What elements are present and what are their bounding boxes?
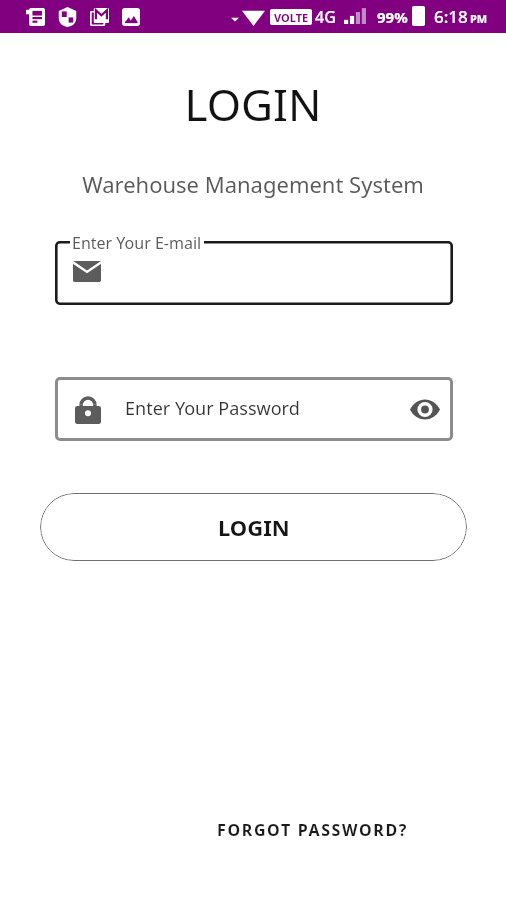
- staticText: PM: [470, 11, 488, 26]
- staticText: 6:18: [434, 5, 468, 28]
- staticText: LOGIN: [218, 512, 290, 542]
- staticText: Enter Your E-mail: [72, 232, 202, 254]
- staticText: 4G: [315, 6, 336, 28]
- button[interactable]: FORGOT PASSWORD?: [211, 813, 415, 847]
- staticText: Warehouse Management System: [0, 169, 506, 199]
- button[interactable]: Show password: [403, 387, 447, 431]
- staticText: Enter Your Password: [125, 396, 300, 421]
- staticText: LOGIN: [0, 74, 506, 134]
- button[interactable]: LOGIN: [40, 493, 467, 561]
- staticText: FORGOT PASSWORD?: [217, 819, 409, 841]
- staticText: 99%: [377, 7, 408, 27]
- staticText: VOLTE: [274, 10, 309, 25]
